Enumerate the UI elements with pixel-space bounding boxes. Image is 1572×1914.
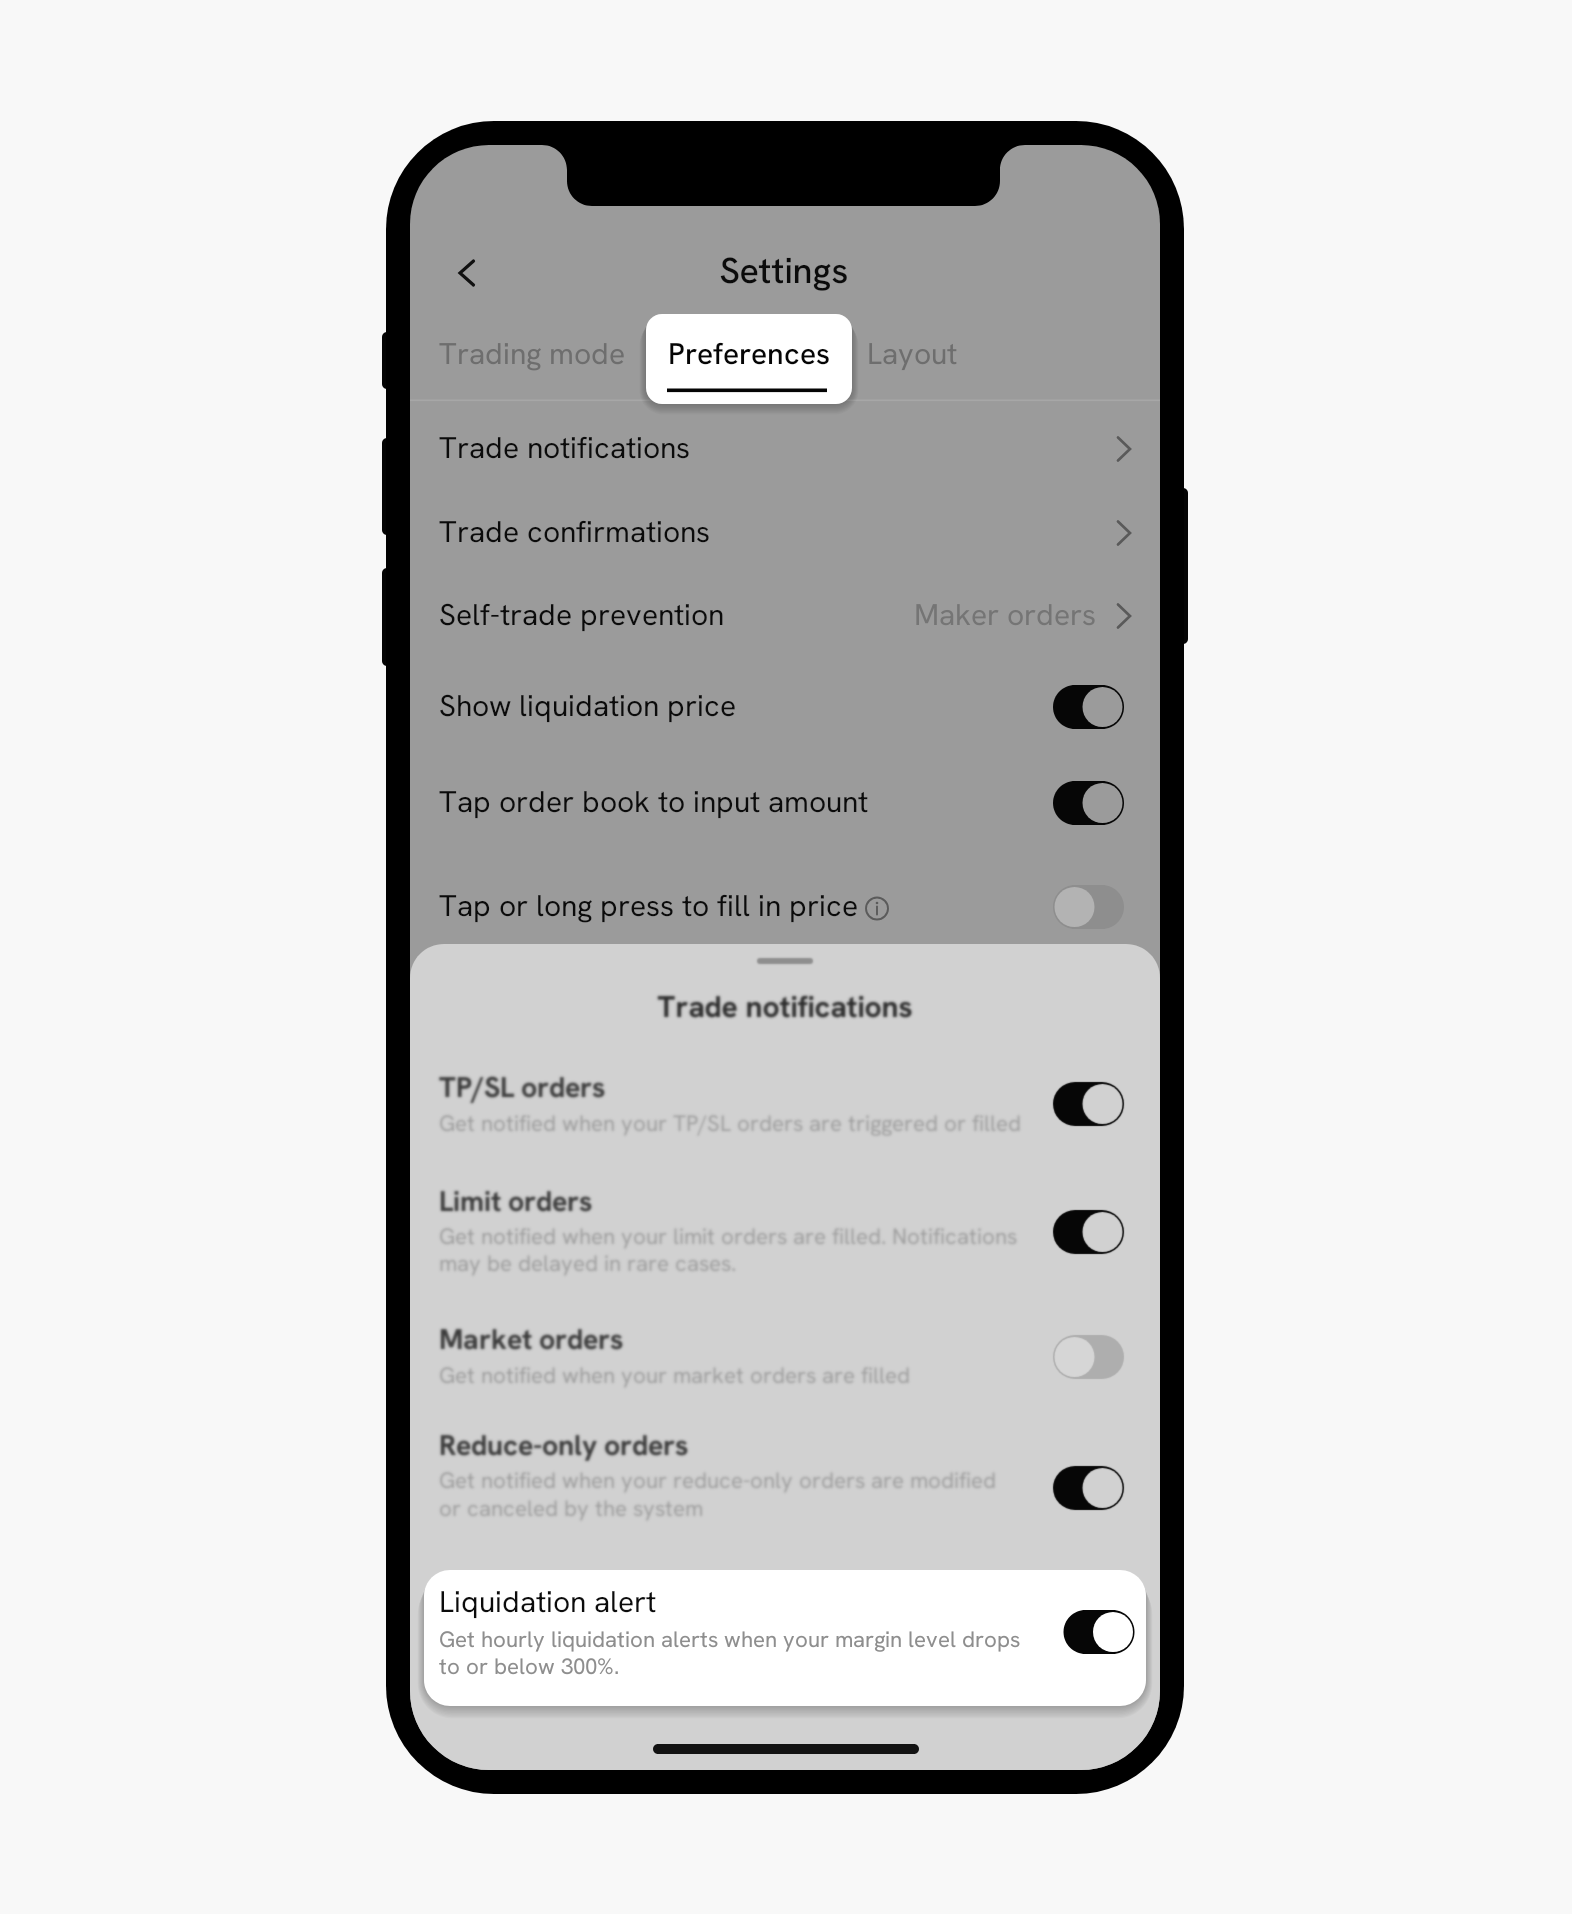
button[interactable]: Preferences tab (646, 314, 852, 404)
button[interactable]: Trade notifications (410, 401, 1160, 485)
button[interactable]: Market orders (410, 1301, 1160, 1413)
button[interactable]: Show liquidation price (410, 659, 1160, 755)
button[interactable]: Layout tab (854, 315, 974, 385)
button[interactable]: Trade confirmations (410, 485, 1160, 569)
button[interactable]: Tap order book to input amount (410, 755, 1160, 855)
button[interactable]: TP/SL orders switch, on (1053, 1082, 1124, 1126)
button[interactable]: Reduce-only orders (410, 1413, 1160, 1555)
button[interactable]: Reduce-only orders switch, on (1053, 1466, 1124, 1510)
button[interactable]: Self-trade prevention, Maker orders (410, 569, 1160, 659)
button[interactable]: TP/SL orders (410, 1051, 1160, 1163)
button[interactable]: Liquidation alert (424, 1570, 1146, 1706)
button[interactable]: Trading mode tab (422, 315, 622, 385)
button[interactable]: Limit orders switch, on (1053, 1210, 1124, 1254)
button[interactable]: Tap order book to input amount switch, o… (1053, 781, 1124, 825)
button[interactable]: Tap or long press to fill in price switc… (1053, 885, 1124, 929)
button[interactable]: Market orders switch, off (1053, 1335, 1124, 1379)
button[interactable]: Limit orders (410, 1163, 1160, 1301)
button[interactable]: Back (432, 240, 504, 306)
button[interactable]: Show liquidation price switch, on (1053, 685, 1124, 729)
button[interactable]: Tap or long press to fill in price (410, 855, 1160, 947)
button[interactable]: Liquidation alert switch, on (1063, 1610, 1134, 1654)
